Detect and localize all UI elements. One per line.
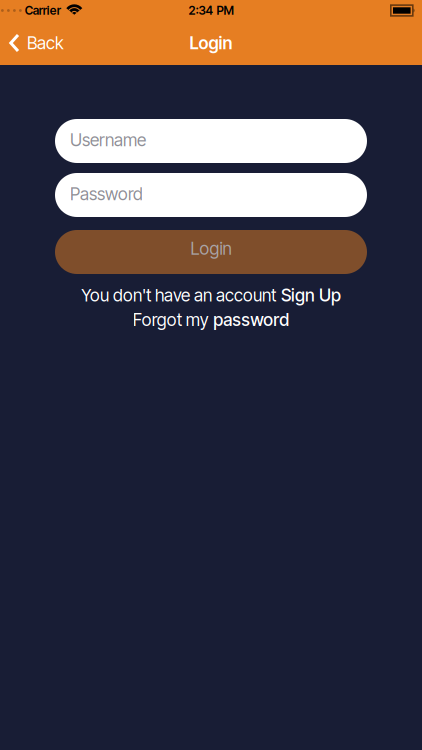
button[interactable]: Forgot my: [133, 309, 289, 330]
button[interactable]: Back: [0, 33, 64, 53]
staticText: Username: [70, 130, 146, 150]
staticText: Login: [190, 238, 231, 259]
staticText: You don't have an account: [81, 285, 276, 305]
staticText: Forgot my: [133, 309, 209, 330]
staticText: Carrier: [25, 3, 61, 18]
staticText: 2:34 PM: [188, 3, 233, 18]
staticText: Sign Up: [281, 285, 341, 305]
staticText: Password: [70, 184, 143, 204]
button[interactable]: Login: [55, 230, 367, 274]
staticText: Back: [27, 33, 64, 53]
staticText: password: [213, 309, 289, 330]
button[interactable]: Sign Up: [281, 285, 341, 305]
staticText: Login: [189, 33, 232, 53]
